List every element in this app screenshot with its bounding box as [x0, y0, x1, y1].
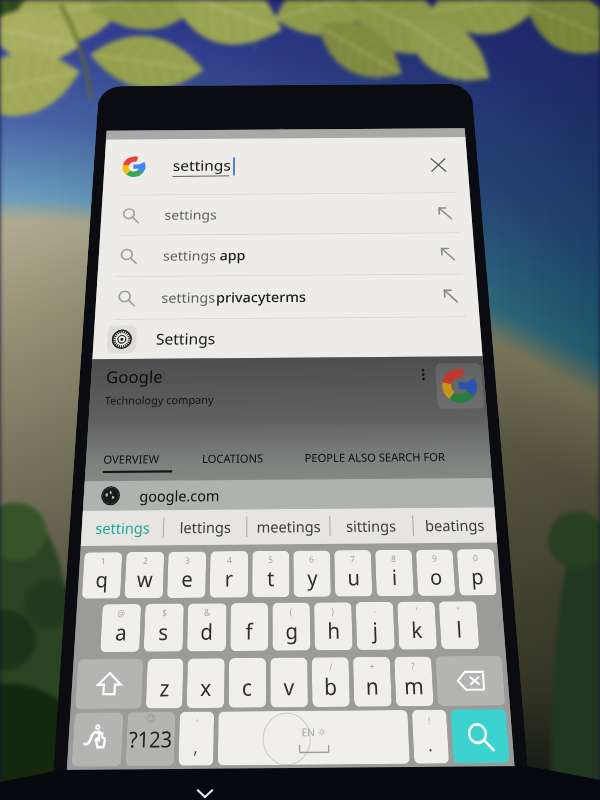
button[interactable]: Backspace: [435, 656, 505, 706]
button[interactable]: 6: [293, 550, 331, 597]
button[interactable]: $: [144, 603, 184, 652]
button[interactable]: 5: [252, 551, 289, 597]
staticText: 1: [101, 554, 106, 566]
staticText: ?123: [128, 724, 173, 755]
button[interactable]: LOCATIONS: [202, 450, 264, 466]
button[interactable]: lettings: [163, 509, 246, 545]
staticText: sittings: [346, 515, 397, 536]
button[interactable]: ?: [394, 656, 434, 706]
button[interactable]: v: [270, 657, 308, 707]
button[interactable]: ?123: [125, 712, 175, 766]
staticText: p: [470, 562, 485, 591]
staticText: Settings: [156, 328, 216, 349]
staticText: ): [331, 604, 335, 617]
staticText: lettings: [179, 517, 232, 537]
staticText: 2: [143, 554, 148, 566]
staticText: beatings: [424, 515, 485, 536]
button[interactable]: 1: [82, 552, 122, 599]
staticText: ‘: [196, 715, 199, 729]
staticText: Google: [105, 365, 164, 388]
button[interactable]: ‘: [178, 712, 214, 766]
button[interactable]: Handwriting input: [71, 712, 123, 767]
button[interactable]: Insert suggestion: [428, 237, 466, 270]
staticText: w: [136, 565, 153, 594]
staticText: Technology company: [104, 392, 214, 407]
staticText: app: [220, 246, 246, 264]
button[interactable]: f: [230, 603, 268, 651]
button[interactable]: !: [412, 710, 449, 764]
staticText: r: [225, 564, 233, 593]
button[interactable]: (: [272, 602, 310, 651]
button[interactable]: Insert suggestion: [431, 278, 469, 313]
button[interactable]: x: [187, 658, 225, 708]
staticText: l: [456, 615, 463, 645]
staticText: u: [347, 563, 361, 592]
button[interactable]: 2: [124, 552, 164, 598]
button[interactable]: google.com: [83, 478, 494, 511]
staticText: (: [289, 605, 293, 617]
staticText: OVERVIEW: [103, 451, 160, 467]
staticText: 7: [350, 552, 355, 564]
button[interactable]: 4: [210, 551, 248, 598]
staticText: settings: [161, 288, 216, 307]
button[interactable]: OVERVIEW: [103, 451, 160, 467]
button[interactable]: +: [353, 657, 392, 707]
button[interactable]: settings: [98, 233, 476, 276]
button[interactable]: Insert suggestion: [426, 196, 463, 229]
button[interactable]: @: [100, 604, 141, 652]
staticText: z: [159, 673, 170, 704]
button[interactable]: ": [439, 601, 479, 649]
staticText: meetings: [257, 516, 321, 537]
button[interactable]: 8: [375, 550, 414, 596]
staticText: privacyterms: [216, 287, 306, 306]
button[interactable]: settings: [95, 274, 479, 319]
button[interactable]: 9: [416, 549, 455, 596]
button[interactable]: sittings: [330, 508, 413, 544]
button[interactable]: 0: [457, 549, 497, 596]
button[interactable]: ': [397, 601, 437, 650]
staticText: c: [242, 672, 253, 703]
staticText: 0: [473, 551, 479, 563]
staticText: 3: [185, 554, 190, 566]
button[interactable]: PEOPLE ALSO SEARCH FOR: [304, 449, 446, 465]
button[interactable]: /: [312, 657, 350, 707]
staticText: s: [158, 617, 170, 647]
staticText: /: [329, 660, 333, 672]
button[interactable]: beatings: [413, 507, 497, 543]
button[interactable]: Shift: [75, 659, 143, 709]
button[interactable]: Search: [450, 709, 510, 763]
button[interactable]: Space: [218, 710, 410, 765]
staticText: n: [365, 671, 379, 702]
staticText: settings: [172, 156, 231, 175]
staticText: x: [200, 672, 213, 703]
button[interactable]: Settings: [92, 317, 482, 359]
staticText: q: [95, 565, 109, 594]
button[interactable]: ): [314, 602, 353, 650]
staticText: $: [162, 606, 168, 618]
button[interactable]: 3: [167, 551, 206, 598]
staticText: d: [200, 617, 213, 647]
staticText: LOCATIONS: [202, 450, 264, 466]
button[interactable]: settings: [100, 193, 473, 235]
staticText: @: [117, 606, 126, 619]
staticText: ,: [193, 734, 199, 758]
staticText: settings: [95, 517, 151, 538]
button[interactable]: z: [146, 658, 183, 709]
staticText: settings: [163, 246, 220, 264]
staticText: f: [245, 616, 253, 646]
button[interactable]: settings: [103, 137, 470, 195]
button[interactable]: Clear query: [417, 147, 460, 183]
button[interactable]: More options: [411, 363, 434, 385]
button[interactable]: 7: [334, 550, 372, 597]
button[interactable]: c: [228, 658, 266, 708]
button[interactable]: settings: [81, 510, 164, 546]
staticText: e: [181, 565, 193, 593]
staticText: ": [456, 603, 461, 616]
staticText: ?: [410, 659, 415, 672]
button[interactable]: meetings: [247, 509, 330, 545]
staticText: i: [391, 563, 398, 592]
button[interactable]: Hide keyboard: [188, 776, 222, 800]
button[interactable]: -: [356, 602, 395, 650]
button[interactable]: &: [187, 603, 226, 651]
staticText: !: [427, 713, 431, 727]
